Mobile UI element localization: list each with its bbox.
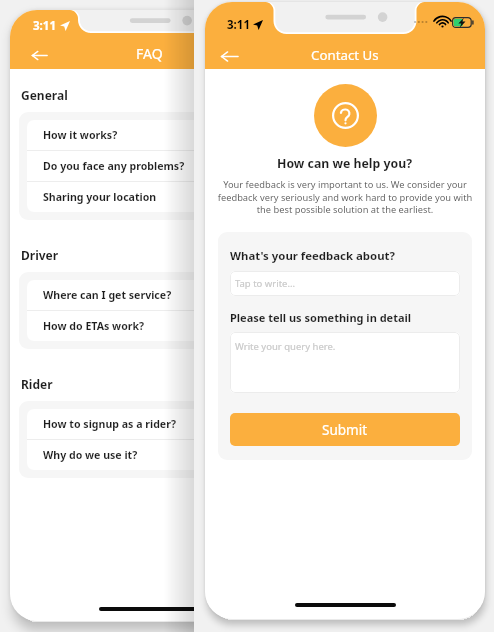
button[interactable]: How do ETAs work? [27,311,194,341]
staticText: FAQ [136,44,163,63]
staticText: Write your query here. [235,340,336,353]
staticText: Sharing your location [43,190,157,204]
button[interactable]: How it works? [27,120,194,150]
button[interactable]: Write your query here. [230,332,460,393]
staticText: Tap to write... [235,277,296,290]
staticText: 3:11 [227,17,250,33]
staticText: How can we help you? [277,155,413,172]
staticText: Why do we use it? [43,448,138,462]
staticText: 3:11 [33,18,56,34]
button[interactable]: Back [213,40,245,72]
button[interactable]: How to signup as a rider? [27,409,194,439]
button[interactable]: Sharing your location [27,182,194,212]
staticText: Contact Us [311,46,379,64]
staticText: How do ETAs work? [43,319,145,333]
staticText: Submit [322,421,368,439]
button[interactable]: Where can I get service? [27,280,194,310]
staticText: Do you face any problems? [43,159,185,173]
staticText: Please tell us something in detail [230,310,412,325]
staticText: Where can I get service? [43,288,172,302]
staticText: How it works? [43,128,118,142]
button[interactable]: Back [24,40,54,70]
button[interactable]: Why do we use it? [27,440,194,470]
staticText: Rider [21,376,53,392]
button[interactable]: Submit [230,413,460,446]
button[interactable]: Tap to write... [230,271,460,296]
staticText: Your feedback is very important to us. W… [214,178,476,215]
staticText: What's your feedback about? [230,248,395,264]
button[interactable]: Do you face any problems? [27,151,194,181]
staticText: Driver [21,247,59,263]
staticText: General [21,87,68,103]
staticText: How to signup as a rider? [43,417,176,431]
